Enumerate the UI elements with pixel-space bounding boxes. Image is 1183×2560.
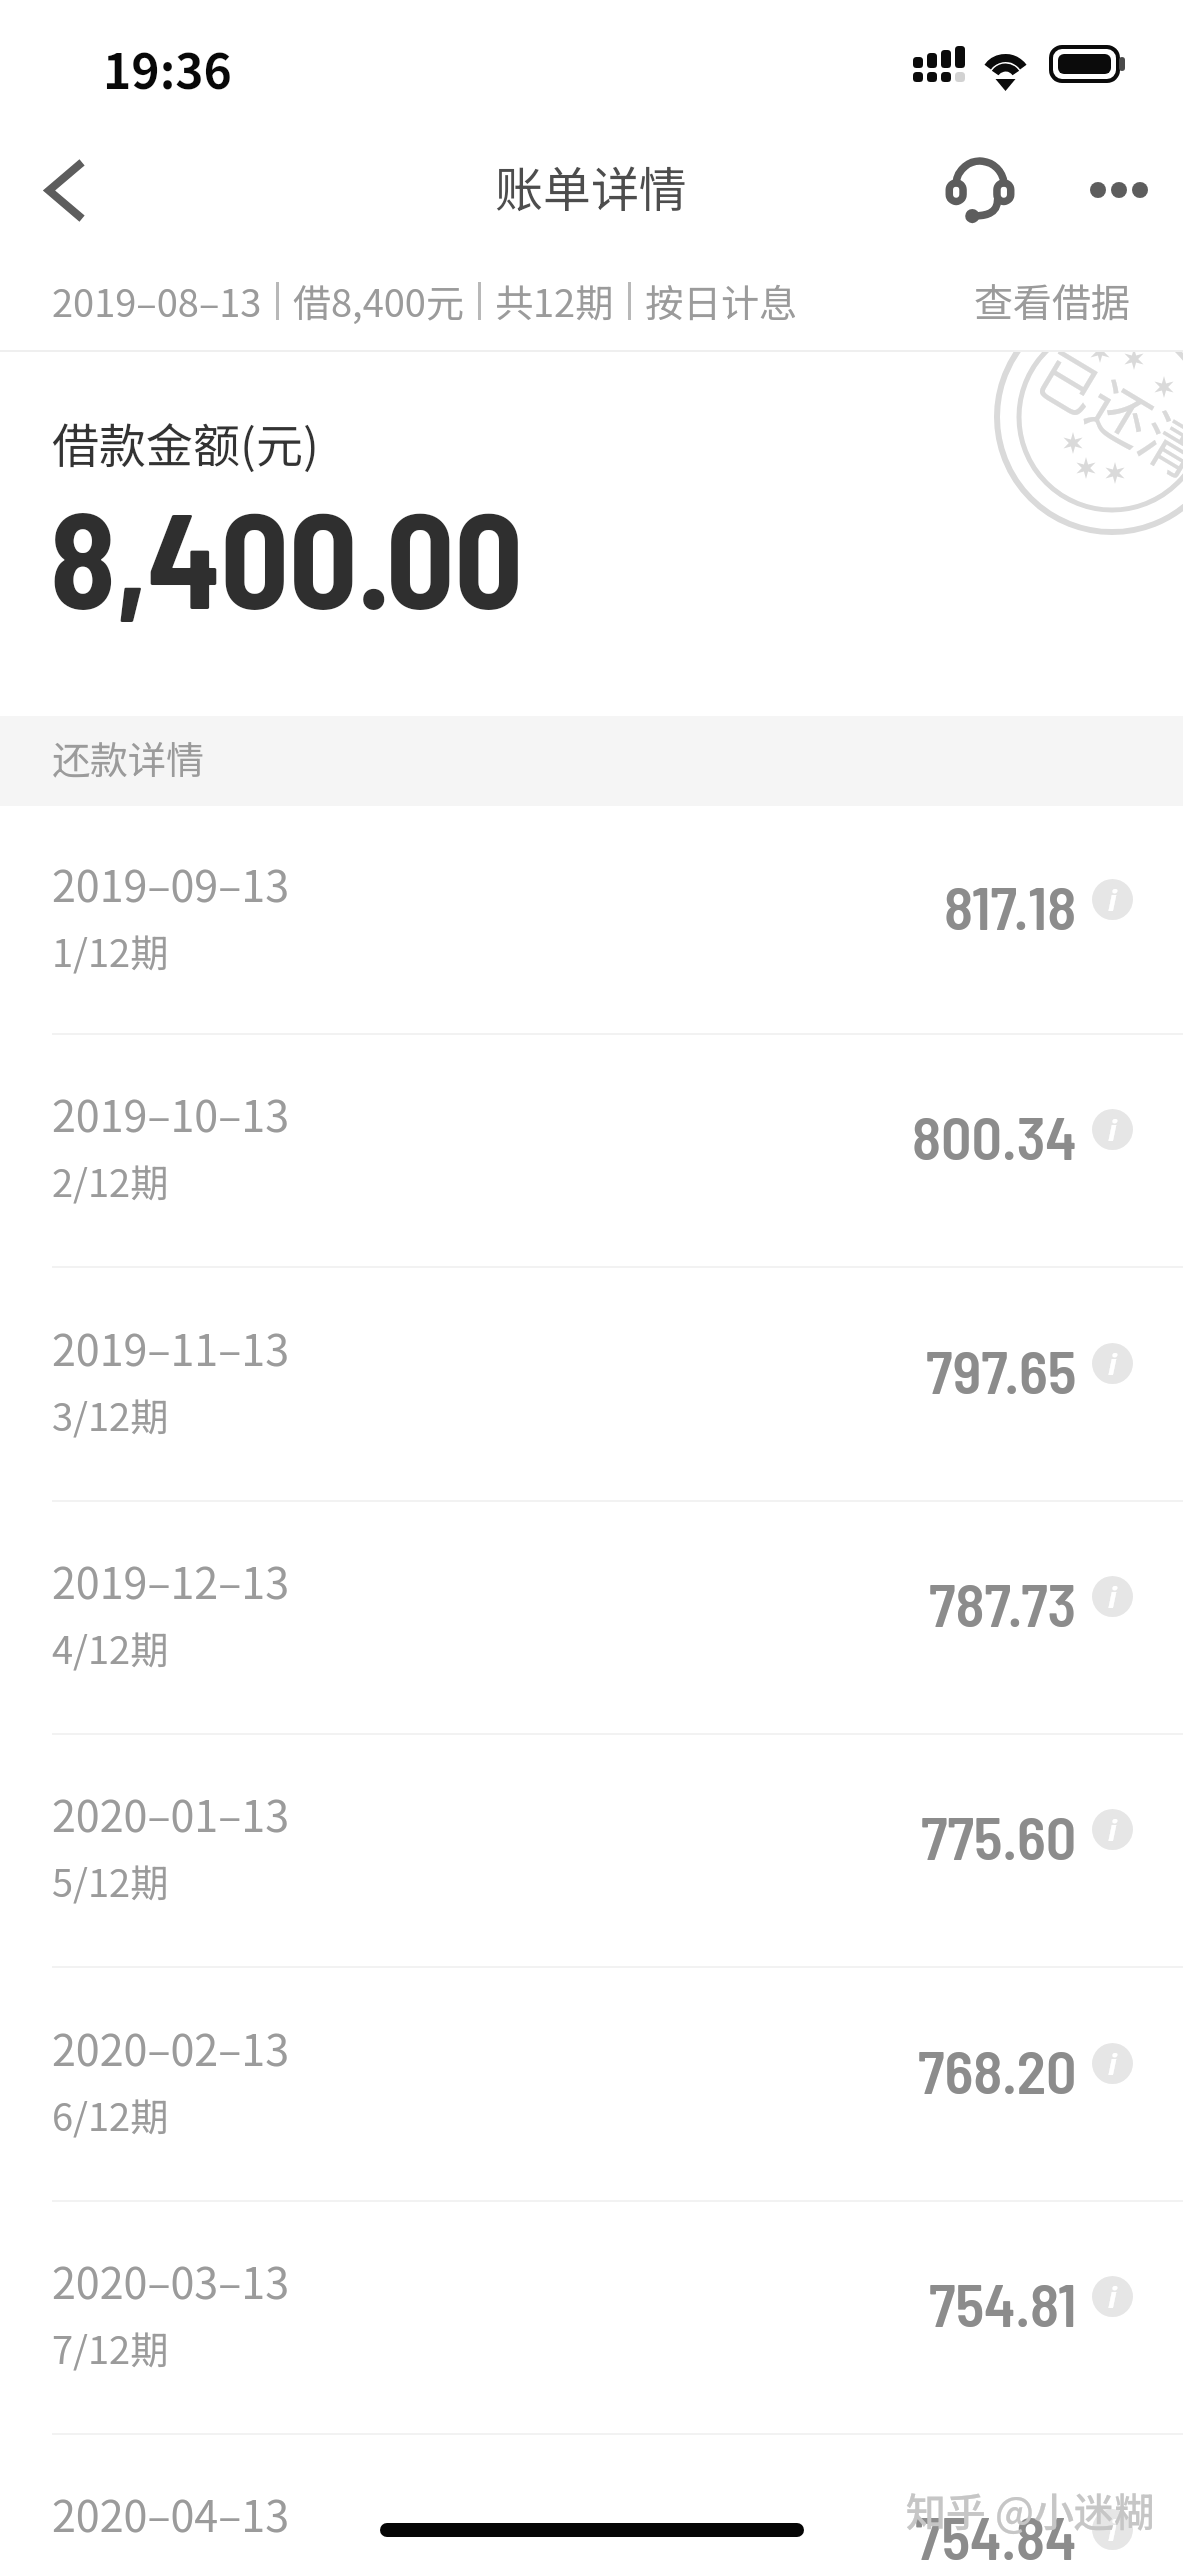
staticText: 8,400.00 bbox=[50, 475, 523, 636]
button[interactable]: 2019–09–13 bbox=[0, 806, 1183, 1033]
staticText: 2020–02–13 bbox=[52, 2016, 290, 2078]
button[interactable]: 2019–12–13 bbox=[0, 1500, 1183, 1733]
staticText: i bbox=[1108, 2510, 1117, 2549]
staticText: 2/12期 bbox=[52, 1153, 169, 1208]
button[interactable]: 2020–01–13 bbox=[0, 1733, 1183, 1966]
staticText: 2019–12–13 bbox=[52, 1549, 290, 1611]
staticText: 787.73 bbox=[929, 1567, 1077, 1639]
staticText: 2019–11–13 bbox=[52, 1316, 290, 1378]
staticText: 6/12期 bbox=[52, 2087, 169, 2142]
button[interactable]: 查看借据 bbox=[922, 250, 1183, 350]
staticText: i bbox=[1108, 2044, 1117, 2083]
staticText: 2020–01–13 bbox=[52, 1782, 290, 1844]
staticText: i bbox=[1108, 1577, 1117, 1616]
staticText: 2019–08–13 bbox=[52, 273, 262, 328]
staticText: 754.84 bbox=[915, 2500, 1077, 2560]
staticText: 775.60 bbox=[921, 1800, 1077, 1872]
staticText: 账单详情 bbox=[495, 151, 688, 221]
staticText: 7/12期 bbox=[52, 2320, 169, 2375]
staticText: 2019–10–13 bbox=[52, 1082, 290, 1144]
button[interactable]: 2020–03–13 bbox=[0, 2200, 1183, 2433]
staticText: 19:36 bbox=[103, 33, 232, 103]
staticText: 800.34 bbox=[912, 1100, 1077, 1172]
staticText: 已还清 bbox=[1022, 352, 1183, 494]
button[interactable]: 2019–10–13 bbox=[0, 1033, 1183, 1266]
staticText: 还款详情 bbox=[52, 730, 205, 785]
staticText: 2020–04–13 bbox=[52, 2482, 290, 2544]
button[interactable]: More options bbox=[1055, 126, 1183, 254]
staticText: 按日计息 bbox=[645, 273, 798, 328]
staticText: 2019–09–13 bbox=[52, 852, 290, 914]
staticText: 754.81 bbox=[929, 2267, 1077, 2339]
staticText: 4/12期 bbox=[52, 1620, 169, 1675]
staticText: 借款金额(元) bbox=[52, 408, 319, 476]
staticText: 借8,400元 bbox=[293, 273, 464, 328]
staticText: 共12期 bbox=[495, 273, 614, 328]
staticText: i bbox=[1108, 880, 1117, 919]
button[interactable]: 2020–04–13 bbox=[0, 2433, 1183, 2560]
staticText: i bbox=[1108, 1110, 1117, 1149]
staticText: i bbox=[1108, 1810, 1117, 1849]
staticText: 2020–03–13 bbox=[52, 2249, 290, 2311]
staticText: 5/12期 bbox=[52, 1853, 169, 1908]
staticText: 797.65 bbox=[926, 1334, 1077, 1406]
staticText: 3/12期 bbox=[52, 1387, 169, 1442]
staticText: 817.18 bbox=[944, 870, 1077, 942]
staticText: i bbox=[1108, 1344, 1117, 1383]
button[interactable]: Customer service bbox=[916, 126, 1044, 254]
staticText: 查看借据 bbox=[974, 272, 1131, 328]
staticText: i bbox=[1108, 2277, 1117, 2316]
button[interactable]: 2019–11–13 bbox=[0, 1266, 1183, 1500]
staticText: 1/12期 bbox=[52, 923, 169, 978]
button[interactable]: Back bbox=[0, 125, 130, 255]
staticText: 知乎 @小迷糊 bbox=[906, 2481, 1154, 2539]
staticText: 768.20 bbox=[918, 2034, 1077, 2106]
button[interactable]: 2020–02–13 bbox=[0, 1966, 1183, 2200]
